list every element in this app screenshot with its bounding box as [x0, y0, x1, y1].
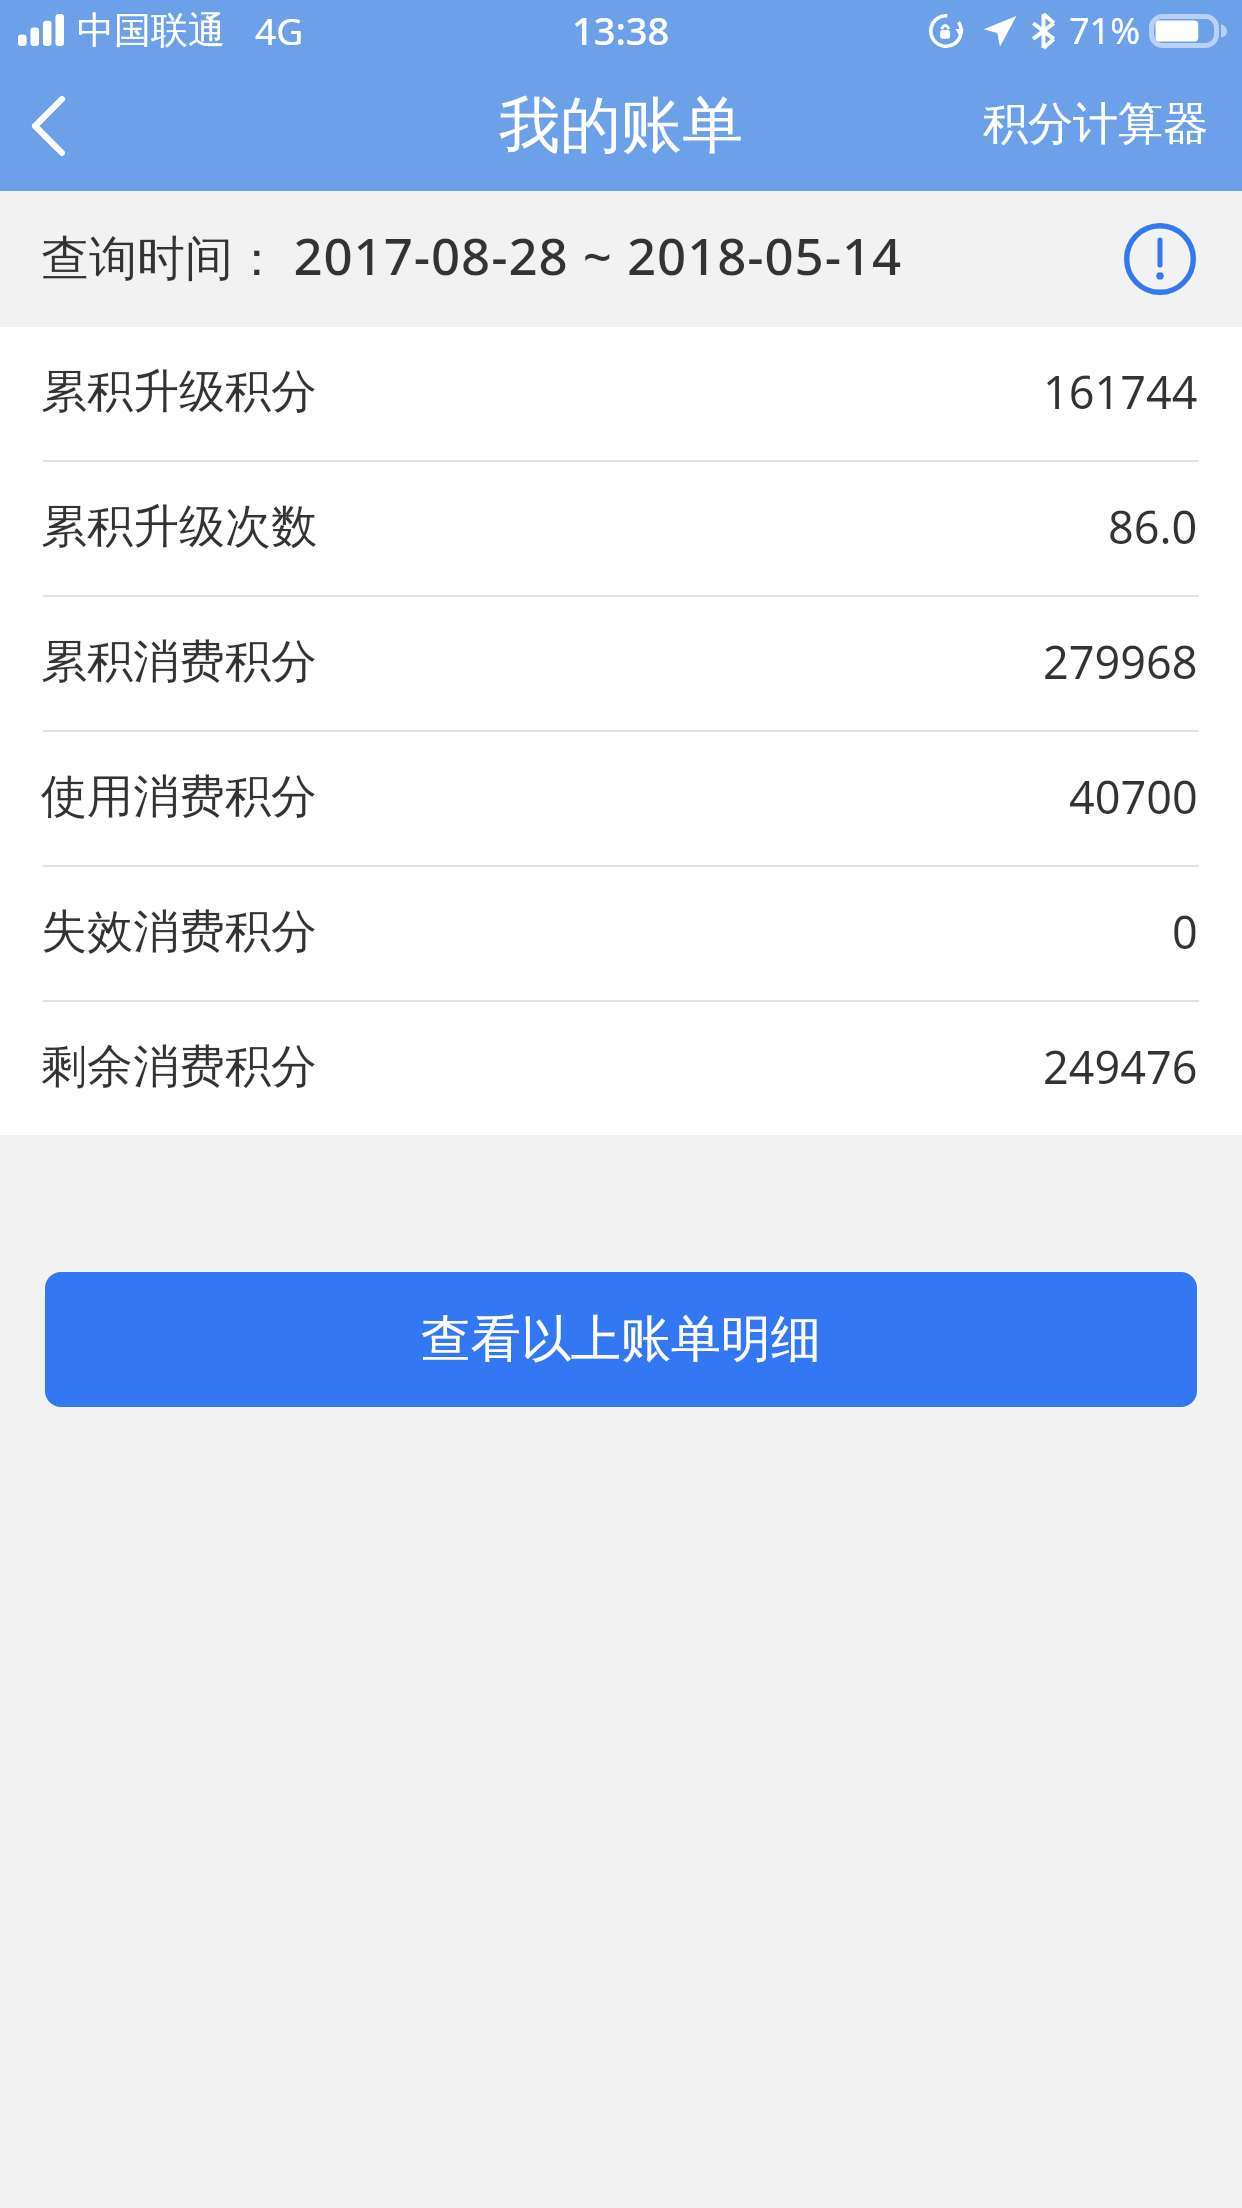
button[interactable]: 积分计算器: [953, 60, 1242, 191]
staticText: 13:38: [572, 4, 670, 56]
staticText: 累积消费积分: [41, 633, 317, 691]
staticText: 86.0: [1108, 496, 1198, 557]
button[interactable]: 累积升级次数: [0, 462, 1242, 595]
button[interactable]: 返回: [0, 60, 96, 191]
staticText: 剩余消费积分: [41, 1038, 317, 1096]
staticText: 279968: [1043, 631, 1198, 692]
button[interactable]: 累积升级积分: [0, 327, 1242, 460]
staticText: 40700: [1069, 766, 1198, 827]
staticText: 4G: [255, 5, 304, 55]
staticText: 失效消费积分: [41, 903, 317, 961]
button[interactable]: 累积消费积分: [0, 597, 1242, 730]
staticText: 累积升级积分: [41, 363, 317, 421]
staticText: 累积升级次数: [41, 498, 317, 556]
button[interactable]: 说明: [1120, 219, 1200, 299]
staticText: 使用消费积分: [41, 768, 317, 826]
staticText: 查看以上账单明细: [421, 1308, 821, 1371]
button[interactable]: 使用消费积分: [0, 732, 1242, 865]
button[interactable]: 剩余消费积分: [0, 1002, 1242, 1135]
staticText: 161744: [1043, 361, 1198, 422]
staticText: 积分计算器: [983, 96, 1208, 153]
staticText: 0: [1172, 901, 1198, 962]
staticText: 71%: [1069, 6, 1141, 55]
staticText: 我的账单: [499, 87, 743, 164]
staticText: 查询时间： 2017-08-28 ~ 2018-05-14: [41, 220, 903, 289]
button[interactable]: 查看以上账单明细: [45, 1272, 1197, 1407]
staticText: 中国联通: [77, 7, 225, 54]
button[interactable]: 失效消费积分: [0, 867, 1242, 1000]
staticText: 249476: [1043, 1036, 1198, 1097]
